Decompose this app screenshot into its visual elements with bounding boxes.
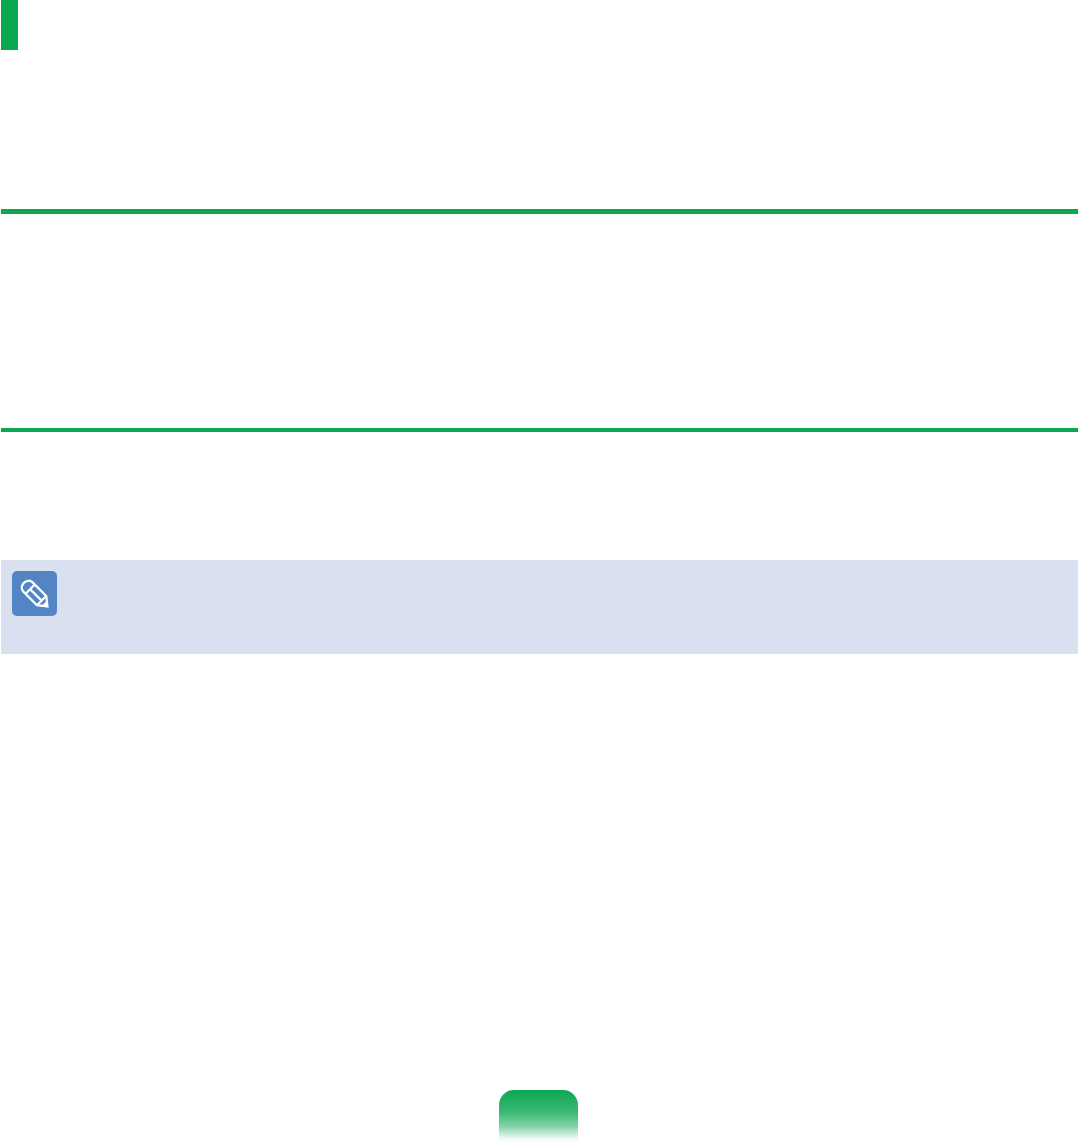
button[interactable]: Edit <box>12 571 57 616</box>
button[interactable]: Edit <box>1 560 1078 654</box>
button[interactable]: Action <box>499 1090 578 1143</box>
